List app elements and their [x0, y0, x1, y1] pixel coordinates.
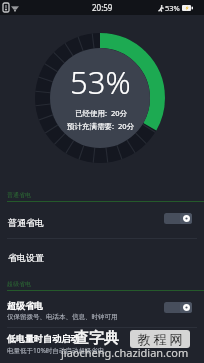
staticText: 预计充满需要: 20分: [67, 121, 134, 131]
staticText: 普通省电: [8, 217, 44, 228]
other: Wi-Fi: [11, 4, 19, 12]
staticText: 已经使用: 20分: [75, 108, 127, 118]
button[interactable]: Toggle switch: [164, 213, 192, 224]
staticText: jiaocheng.chazidian.com: [61, 345, 189, 360]
other: Step counter: [158, 5, 164, 12]
button[interactable]: 省电设置: [0, 245, 204, 269]
staticText: 20:59: [92, 2, 113, 13]
staticText: 超级省电: [7, 280, 31, 288]
button[interactable]: 低电量时自动启动: [0, 331, 204, 355]
staticText: 低电量时自动启动: [7, 333, 79, 344]
staticText: 53%: [165, 3, 180, 13]
other: Battery charging: [182, 5, 193, 11]
button[interactable]: 超级省电: [0, 298, 204, 322]
staticText: 超级省电: [7, 300, 43, 311]
staticText: 教程网: [136, 331, 184, 347]
staticText: 省电设置: [8, 252, 44, 263]
other: SIM card: [3, 3, 9, 12]
staticText: 53%: [70, 61, 131, 103]
button[interactable]: Toggle switch: [164, 302, 192, 313]
staticText: 查字典: [74, 329, 119, 348]
staticText: 普通省电: [7, 191, 31, 199]
staticText: 电量低于10%时自动启动超级省电: [7, 346, 105, 355]
button[interactable]: 普通省电: [0, 210, 204, 234]
staticText: 仅保留拨号、电话本、信息、时钟可用: [7, 313, 118, 321]
